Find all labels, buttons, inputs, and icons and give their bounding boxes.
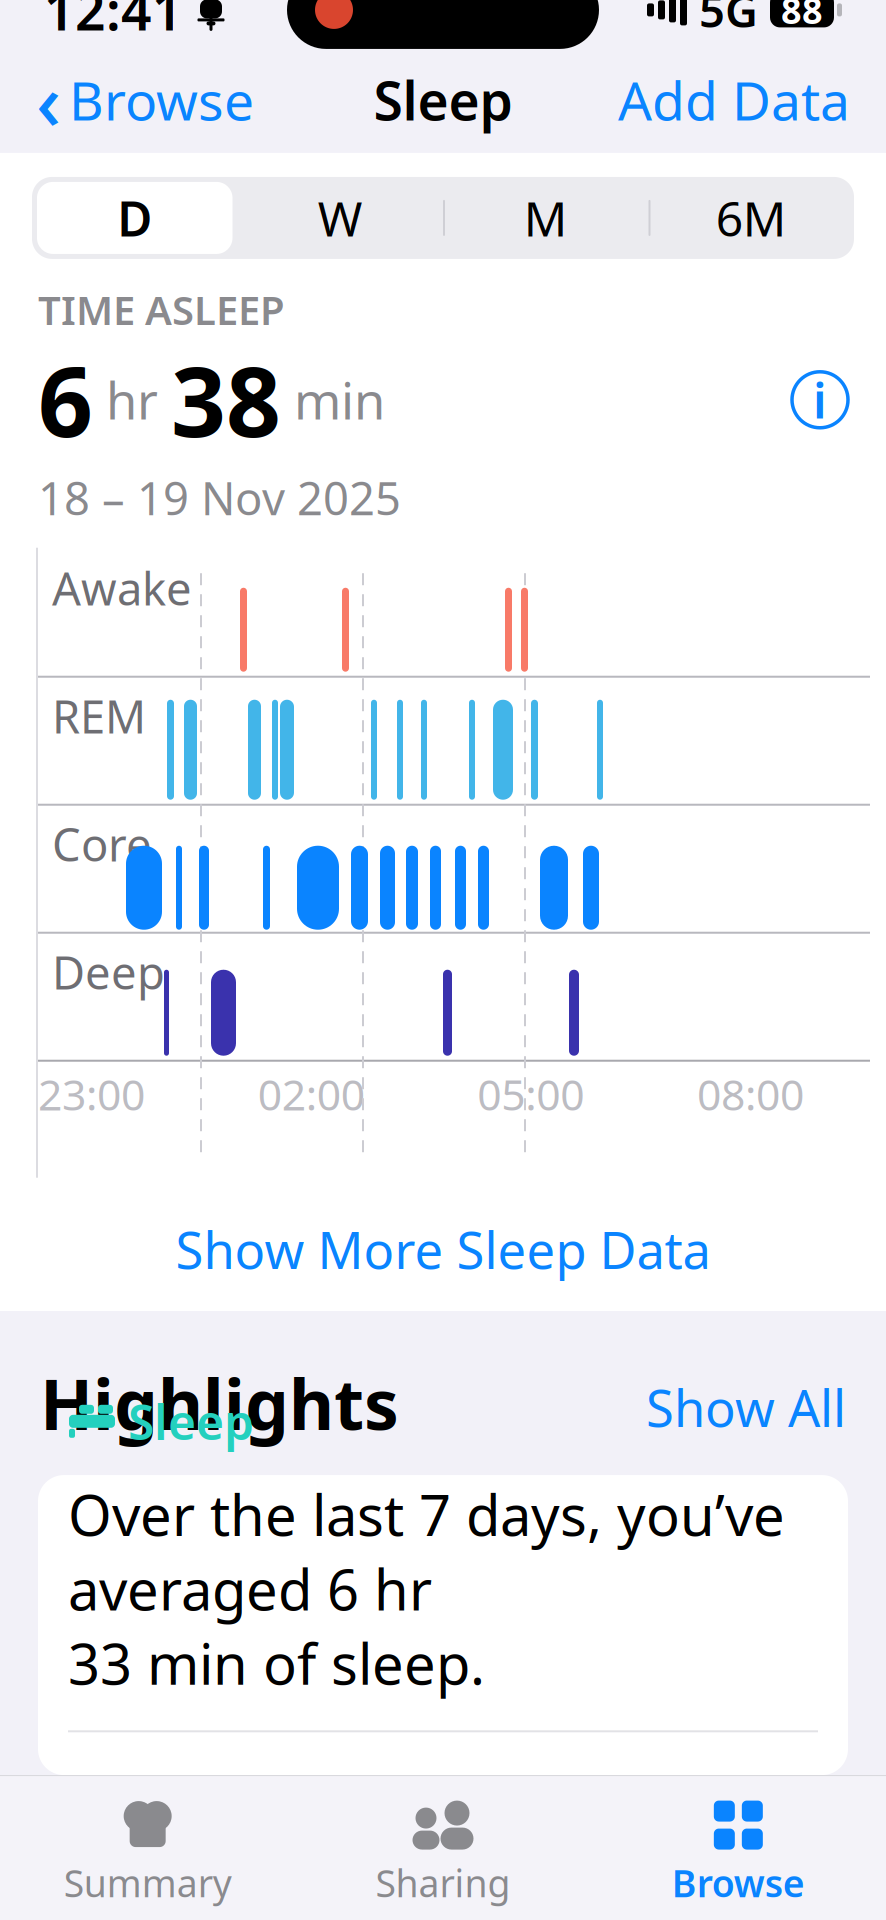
staticText: ‹: [36, 49, 61, 151]
staticText: M: [524, 186, 568, 250]
staticText: Over the last 7 days, you’ve averaged 6 …: [68, 1477, 785, 1700]
staticText: Sleep: [373, 64, 512, 135]
staticText: Add Data: [618, 64, 850, 135]
staticText: Browse: [672, 1858, 805, 1908]
staticText: 02:00: [258, 1066, 365, 1122]
staticText: i: [813, 368, 827, 432]
staticText: TIME ASLEEP: [38, 283, 285, 336]
button[interactable]: Show All: [626, 1366, 846, 1449]
button[interactable]: Show More Sleep Data: [0, 1188, 886, 1311]
staticText: 18 – 19 Nov 2025: [38, 467, 401, 528]
button[interactable]: Sharing: [295, 1794, 591, 1914]
staticText: 38: [171, 336, 281, 463]
staticText: 23:00: [38, 1066, 145, 1122]
staticText: Average Time Asleep: [68, 1768, 328, 1889]
staticText: 05:00: [477, 1066, 584, 1122]
staticText: 12:41: [44, 0, 183, 45]
staticText: W: [318, 186, 363, 250]
button[interactable]: ‹: [16, 39, 274, 161]
staticText: Core: [52, 814, 152, 874]
staticText: Show More Sleep Data: [175, 1216, 710, 1283]
staticText: D: [117, 186, 152, 250]
button[interactable]: W: [237, 177, 443, 259]
staticText: 88: [781, 0, 823, 34]
button[interactable]: Add Data: [598, 54, 870, 145]
staticText: Sleep: [128, 1389, 254, 1453]
staticText: 5G: [699, 0, 758, 40]
staticText: Show All: [646, 1374, 846, 1441]
staticText: 6: [38, 336, 93, 463]
staticText: Browse: [69, 64, 254, 135]
button[interactable]: Browse: [591, 1794, 886, 1914]
staticText: Summary: [64, 1858, 232, 1908]
staticText: hr: [93, 366, 171, 433]
button[interactable]: D: [32, 177, 237, 259]
button[interactable]: 6M: [648, 177, 854, 259]
button[interactable]: Sleep: [38, 1475, 848, 1775]
button[interactable]: M: [443, 177, 648, 259]
button[interactable]: About time asleep: [792, 372, 848, 428]
staticText: REM: [52, 686, 146, 746]
staticText: Awake: [52, 558, 192, 618]
staticText: 08:00: [697, 1066, 804, 1122]
staticText: Sharing: [375, 1858, 510, 1908]
staticText: Highlights: [40, 1357, 399, 1449]
staticText: min: [281, 366, 385, 433]
staticText: Deep: [52, 942, 165, 1002]
staticText: 6M: [716, 186, 787, 250]
button[interactable]: Summary: [0, 1794, 295, 1914]
